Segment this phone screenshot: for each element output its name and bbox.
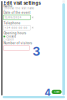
staticText: 4 [45, 87, 51, 98]
staticText: Edit visit settings [4, 1, 41, 6]
staticText: +34 600 00 00 [4, 26, 27, 29]
staticText: Telephone [4, 21, 21, 25]
staticText: Number of visitors [4, 41, 33, 45]
staticText: Open [6, 38, 14, 41]
staticText: Save [54, 90, 59, 93]
button[interactable]: Open [3, 38, 17, 41]
staticText: 12/05/2024 [4, 16, 21, 19]
staticText: Name [4, 4, 13, 8]
staticText: Choose the visit name [4, 7, 35, 10]
staticText: Opening hours [4, 31, 27, 35]
staticText: Closed [6, 35, 16, 38]
button[interactable]: Closed [3, 35, 17, 38]
staticText: Date of the event [4, 11, 31, 14]
button[interactable]: Save [52, 90, 62, 94]
staticText: 3 [33, 44, 41, 58]
